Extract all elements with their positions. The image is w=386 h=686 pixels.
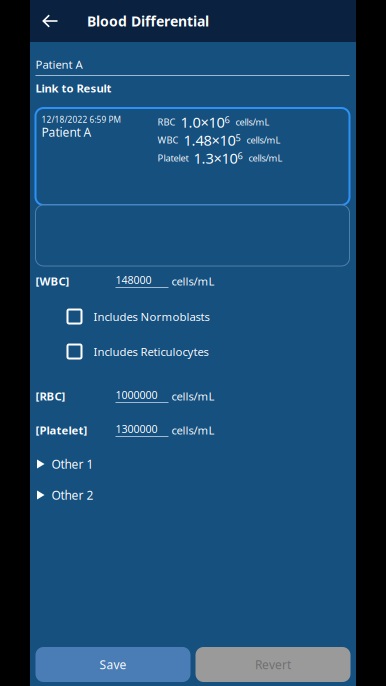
staticText: cells/mL [248, 152, 282, 164]
button[interactable]: Revert [195, 647, 350, 682]
staticText: Includes Reticulocytes [93, 344, 208, 359]
staticText: Platelet [157, 152, 188, 164]
staticText: 1.48×105 [183, 130, 240, 150]
staticText: Revert [255, 656, 291, 673]
button[interactable]: 12/18/2022 6:59 PM [35, 108, 349, 205]
button[interactable]: Includes Reticulocytes [35, 334, 349, 369]
staticText: [WBC] [35, 273, 69, 289]
button[interactable] [35, 205, 349, 266]
staticText: RBC [157, 116, 175, 128]
staticText: cells/mL [235, 116, 269, 128]
staticText: 12/18/2022 6:59 PM [41, 114, 120, 125]
staticText: cells/mL [171, 273, 214, 289]
staticText: 1000000 [115, 387, 157, 402]
staticText: Save [99, 656, 126, 673]
staticText: Other 2 [51, 487, 93, 503]
staticText: Blood Differential [87, 11, 209, 31]
staticText: cells/mL [171, 422, 214, 438]
staticText: 1300000 [115, 421, 157, 436]
button[interactable]: Includes Normoblasts [35, 299, 349, 334]
button[interactable]: Other 1 [35, 454, 349, 474]
staticText: [RBC] [35, 388, 65, 404]
staticText: Other 1 [51, 456, 93, 472]
staticText: cells/mL [246, 134, 280, 146]
staticText: Link to Result [35, 80, 111, 96]
staticText: Patient A [35, 57, 82, 72]
staticText: 1.0×106 [180, 112, 229, 132]
staticText: Includes Normoblasts [93, 309, 209, 324]
staticText: 1.3×106 [193, 148, 242, 168]
staticText: 148000 [115, 272, 151, 287]
staticText: [Platelet] [35, 422, 87, 438]
staticText: cells/mL [171, 388, 214, 404]
button[interactable]: Other 2 [35, 485, 349, 505]
staticText: Patient A [41, 124, 91, 140]
staticText: WBC [157, 134, 178, 146]
button[interactable]: Back [30, 0, 70, 42]
button[interactable]: Save [35, 647, 190, 682]
